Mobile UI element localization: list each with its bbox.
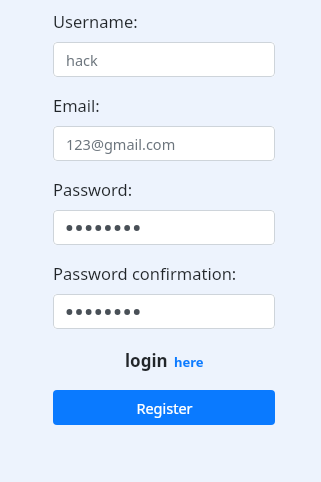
button[interactable]: Register	[53, 390, 275, 425]
button[interactable]	[53, 210, 275, 245]
staticText: Password:	[53, 178, 133, 200]
staticText: Register	[136, 398, 193, 418]
staticText: login	[125, 349, 168, 372]
staticText: here	[174, 353, 204, 371]
button[interactable]	[53, 294, 275, 329]
staticText: Username:	[53, 10, 138, 32]
staticText: hack	[66, 50, 98, 70]
button[interactable]: here	[174, 353, 204, 372]
staticText: 123@gmail.com	[66, 134, 176, 154]
button[interactable]: 123@gmail.com	[53, 126, 275, 161]
staticText: Email:	[53, 94, 100, 116]
button[interactable]: hack	[53, 42, 275, 77]
staticText: Password confirmation:	[53, 262, 237, 284]
